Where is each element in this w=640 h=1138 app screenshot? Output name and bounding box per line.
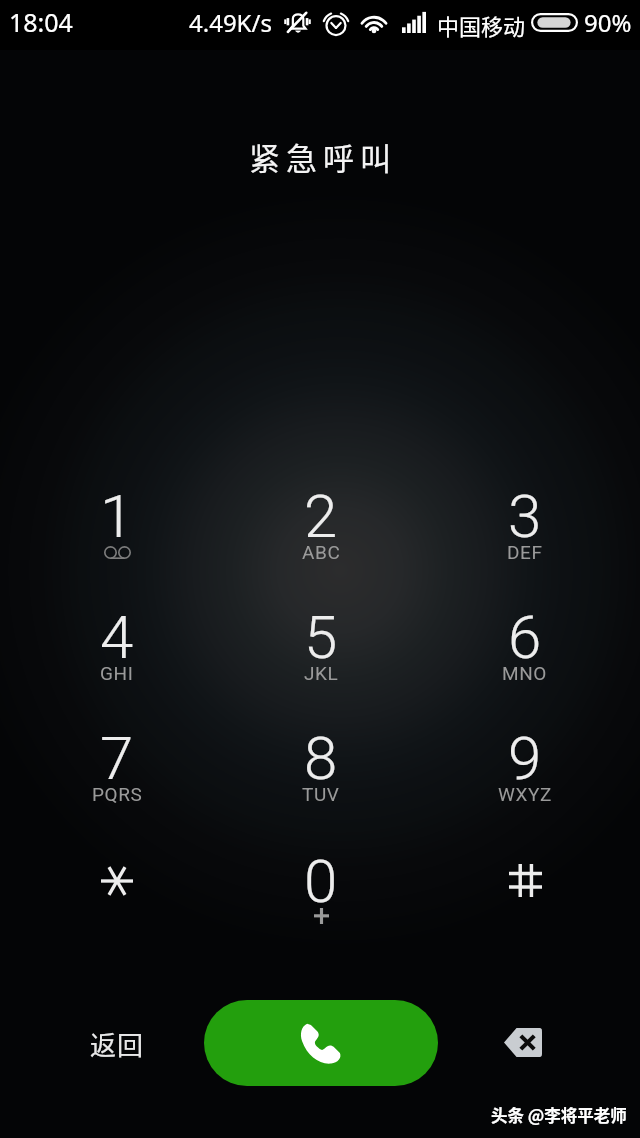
button[interactable]: 7 [15, 701, 219, 815]
button[interactable]: Call [204, 1000, 438, 1086]
staticText: 0 [304, 846, 338, 916]
button[interactable]: Backspace [494, 1018, 552, 1067]
button[interactable]: Pound [423, 824, 627, 938]
button[interactable]: 2 [219, 459, 423, 573]
button[interactable]: 6 [423, 580, 627, 694]
staticText: 4 [100, 602, 134, 672]
button[interactable]: 9 [423, 701, 627, 815]
staticText: 8 [304, 723, 338, 793]
staticText: GHI [100, 662, 134, 684]
staticText: DEF [507, 541, 543, 563]
button[interactable]: 1 [15, 459, 219, 573]
staticText: JKL [304, 662, 339, 684]
staticText: 9 [508, 723, 542, 793]
staticText: 6 [508, 602, 542, 672]
button[interactable]: 返回 [78, 1015, 157, 1073]
staticText: 3 [508, 481, 542, 551]
staticText: 头条 @李将平老师 [491, 1103, 627, 1127]
staticText: MNO [502, 662, 548, 684]
staticText: 7 [100, 723, 134, 793]
button[interactable]: 0 [219, 824, 423, 938]
staticText: PQRS [92, 783, 143, 805]
staticText: TUV [302, 783, 340, 805]
button[interactable]: 3 [423, 459, 627, 573]
staticText: 紧急呼叫 [3, 134, 640, 179]
staticText: WXYZ [498, 783, 552, 805]
staticText: 返回 [90, 1025, 145, 1063]
staticText: 4.49K/s [189, 6, 272, 39]
button[interactable]: 4 [15, 580, 219, 694]
staticText: 5 [304, 602, 338, 672]
staticText: 2 [304, 481, 338, 551]
staticText: 1 [100, 481, 134, 551]
staticText: 18:04 [9, 5, 73, 39]
staticText: ABC [302, 541, 341, 563]
button[interactable]: 8 [219, 701, 423, 815]
button[interactable]: 5 [219, 580, 423, 694]
staticText: 中国移动 [437, 9, 526, 41]
button[interactable]: Star [15, 824, 219, 938]
staticText: 90% [584, 6, 632, 39]
